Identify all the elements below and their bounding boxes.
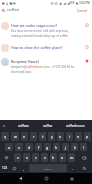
staticText: 123 bbox=[2, 166, 8, 170]
staticText: coffee bbox=[43, 124, 53, 128]
button[interactable]: u bbox=[57, 132, 64, 141]
button[interactable]: t bbox=[39, 132, 46, 141]
button[interactable]: y bbox=[48, 132, 55, 141]
staticText: v bbox=[44, 155, 46, 160]
staticText: Benjamin Razrel bbox=[11, 59, 39, 64]
button[interactable]: z bbox=[14, 153, 21, 162]
button[interactable]: Search bbox=[78, 164, 91, 172]
button[interactable]: s bbox=[15, 143, 23, 151]
button[interactable]: Back bbox=[15, 173, 26, 184]
button[interactable]: Cancel bbox=[77, 8, 88, 12]
staticText: l bbox=[83, 145, 84, 150]
staticText: You have to mix arrival milk with espres… bbox=[11, 29, 69, 33]
button[interactable]: b bbox=[50, 153, 57, 162]
button[interactable]: f bbox=[35, 143, 42, 151]
button[interactable]: Search bbox=[1, 8, 6, 13]
staticText: coffeehouse bbox=[66, 124, 85, 128]
button[interactable]: n bbox=[59, 153, 66, 162]
button[interactable]: How to close the coffee place? bbox=[0, 44, 92, 52]
button[interactable]: m bbox=[68, 153, 75, 162]
button[interactable]: e bbox=[21, 132, 28, 141]
button[interactable]: Recents bbox=[66, 173, 77, 184]
staticText: j bbox=[65, 145, 66, 150]
staticText: g bbox=[46, 145, 49, 150]
button[interactable]: Add bbox=[2, 124, 6, 128]
staticText: i bbox=[69, 134, 70, 139]
button[interactable]: j bbox=[62, 143, 69, 151]
staticText: How to close the coffee place? bbox=[11, 45, 63, 50]
staticText: c bbox=[35, 155, 37, 160]
staticText: z bbox=[17, 155, 19, 160]
staticText: q bbox=[4, 134, 7, 139]
staticText: , bbox=[23, 166, 24, 171]
staticText: Cancel bbox=[77, 8, 88, 12]
staticText: y bbox=[51, 134, 53, 139]
staticText: a bbox=[8, 145, 11, 150]
staticText: How we make cappuccino? bbox=[11, 23, 58, 28]
button[interactable]: v bbox=[41, 153, 48, 162]
staticText: English bbox=[44, 167, 53, 170]
button[interactable]: c bbox=[32, 153, 39, 162]
button[interactable]: g bbox=[44, 143, 51, 151]
button[interactable]: 123 bbox=[1, 164, 9, 172]
button[interactable]: Emoji bbox=[11, 164, 18, 172]
button[interactable]: Shift bbox=[1, 153, 12, 162]
button[interactable]: o bbox=[75, 132, 82, 141]
button[interactable]: i bbox=[66, 132, 73, 141]
staticText: r bbox=[33, 134, 35, 139]
staticText: d bbox=[28, 145, 31, 150]
button[interactable]: How we make cappuccino? bbox=[0, 22, 92, 37]
staticText: 33% bbox=[69, 1, 75, 5]
staticText: making a beautiful and tasty cup of coff… bbox=[11, 34, 69, 38]
staticText: f bbox=[38, 145, 40, 150]
button[interactable]: q bbox=[1, 132, 9, 141]
button[interactable]: Favorite bbox=[85, 45, 89, 49]
staticText: drum and bass bbox=[11, 70, 32, 74]
staticText: b bbox=[52, 155, 55, 160]
staticText: m bbox=[70, 155, 74, 160]
button[interactable]: k bbox=[71, 143, 78, 151]
staticText: n bbox=[61, 155, 64, 160]
staticText: w bbox=[14, 134, 17, 139]
button[interactable]: Favorite bbox=[85, 59, 89, 63]
staticText: coffees bbox=[18, 124, 29, 128]
staticText: p bbox=[86, 134, 89, 139]
staticText: coffee bbox=[7, 7, 20, 13]
button[interactable]: Benjamin Razrel bbox=[0, 58, 92, 73]
button[interactable]: a bbox=[5, 143, 13, 151]
button[interactable]: w bbox=[11, 132, 19, 141]
staticText: u bbox=[59, 134, 62, 139]
button[interactable]: . bbox=[69, 164, 76, 172]
button[interactable]: x bbox=[23, 153, 30, 162]
staticText: h bbox=[55, 145, 58, 150]
button[interactable]: l bbox=[80, 143, 87, 151]
button[interactable]: p bbox=[84, 132, 91, 141]
button[interactable]: h bbox=[53, 143, 60, 151]
button[interactable]: Backspace bbox=[77, 153, 91, 162]
staticText: . bbox=[72, 166, 73, 171]
button[interactable]: Favorite bbox=[85, 23, 89, 27]
staticText: e bbox=[23, 134, 26, 139]
button[interactable]: , bbox=[20, 164, 27, 172]
staticText: o bbox=[77, 134, 80, 139]
button[interactable]: r bbox=[30, 132, 37, 141]
button[interactable]: d bbox=[25, 143, 33, 151]
button[interactable]: Home bbox=[41, 173, 52, 184]
staticText: benjamin@coffeehouse.com +1 579 303 64 h… bbox=[11, 65, 75, 69]
staticText: k bbox=[74, 145, 76, 150]
button[interactable]: Space bbox=[29, 164, 67, 172]
staticText: x bbox=[26, 155, 28, 160]
staticText: 3:04 PM bbox=[79, 1, 90, 5]
staticText: t bbox=[42, 134, 44, 139]
staticText: s bbox=[18, 145, 20, 150]
